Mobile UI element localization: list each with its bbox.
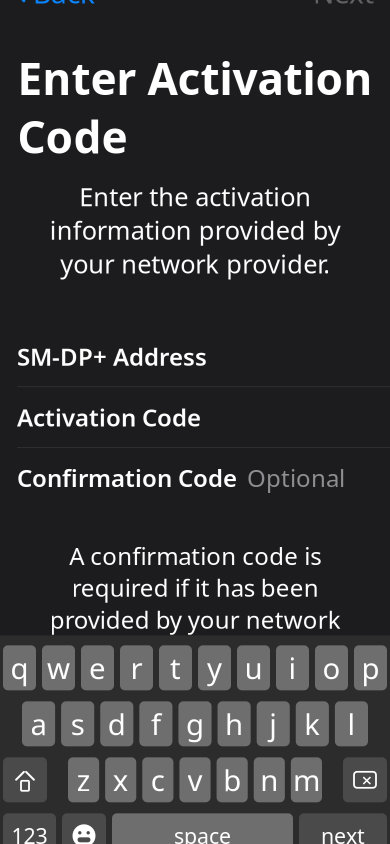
button[interactable]: q [3, 645, 36, 690]
staticText: l [347, 704, 355, 743]
staticText: o [322, 648, 340, 687]
staticText: n [260, 760, 278, 799]
staticText: v [187, 760, 202, 799]
button[interactable]: k [296, 701, 329, 746]
staticText: space [174, 822, 231, 844]
button[interactable]: m [291, 757, 322, 802]
staticText: s [71, 704, 85, 743]
button[interactable]: e [81, 645, 114, 690]
staticText: h [225, 704, 243, 743]
button[interactable]: v [179, 757, 210, 802]
staticText: Enter Activation Code [17, 49, 372, 166]
staticText: w [47, 648, 70, 687]
staticText: u [244, 648, 262, 687]
button[interactable]: g [178, 701, 211, 746]
staticText: z [77, 760, 91, 799]
staticText: SM-DP+ Address [17, 340, 207, 372]
staticText: q [10, 648, 28, 687]
button[interactable]: w [42, 645, 75, 690]
button[interactable]: h [218, 701, 251, 746]
staticText: e [89, 648, 106, 687]
staticText: m [293, 760, 320, 799]
staticText: a [31, 704, 47, 743]
staticText: g [186, 704, 204, 743]
button[interactable]: space [112, 813, 293, 844]
staticText: y [207, 648, 222, 687]
button[interactable]: Confirmation Code [0, 448, 390, 508]
button[interactable]: t [159, 645, 192, 690]
button[interactable]: o [315, 645, 348, 690]
staticText: 123 [11, 822, 47, 844]
button[interactable]: j [257, 701, 290, 746]
button[interactable]: x [105, 757, 136, 802]
staticText: Back [33, 0, 95, 11]
button[interactable]: i [276, 645, 309, 690]
staticText: r [130, 648, 142, 687]
staticText: d [108, 704, 126, 743]
button[interactable]: c [142, 757, 173, 802]
button[interactable]: Back [8, 0, 95, 19]
button[interactable]: n [254, 757, 285, 802]
staticText: Enter the activation information provide… [49, 180, 340, 280]
button[interactable]: Next [313, 0, 382, 19]
staticText: f [151, 704, 161, 743]
staticText: t [170, 648, 181, 687]
staticText: Activation Code [17, 401, 201, 433]
button[interactable]: Activation Code [0, 387, 390, 447]
staticText: i [288, 648, 296, 687]
button[interactable]: s [61, 701, 94, 746]
button[interactable]: u [237, 645, 270, 690]
button[interactable]: a [22, 701, 55, 746]
button[interactable]: next [299, 813, 387, 844]
button[interactable]: SM-DP+ Address [0, 326, 390, 386]
staticText: p [361, 648, 379, 687]
staticText: Optional [247, 462, 345, 494]
staticText: × [361, 767, 372, 792]
button[interactable]: 123 [3, 813, 56, 844]
button[interactable]: Shift [3, 757, 47, 802]
staticText: k [304, 704, 320, 743]
staticText: Next [313, 0, 374, 11]
button[interactable]: l [335, 701, 368, 746]
button[interactable]: d [100, 701, 133, 746]
staticText: next [321, 822, 365, 844]
staticText: j [269, 704, 277, 743]
button[interactable]: z [68, 757, 99, 802]
staticText: c [151, 760, 165, 799]
staticText: x [113, 760, 129, 799]
button[interactable]: Emoji [62, 813, 106, 844]
staticText: Confirmation Code [17, 462, 237, 494]
button[interactable]: Delete [343, 757, 387, 802]
button[interactable]: r [120, 645, 153, 690]
staticText: b [223, 760, 241, 799]
button[interactable]: b [217, 757, 248, 802]
button[interactable]: y [198, 645, 231, 690]
staticText: A confirmation code is required if it ha… [49, 540, 340, 635]
button[interactable]: f [139, 701, 172, 746]
button[interactable]: p [354, 645, 387, 690]
